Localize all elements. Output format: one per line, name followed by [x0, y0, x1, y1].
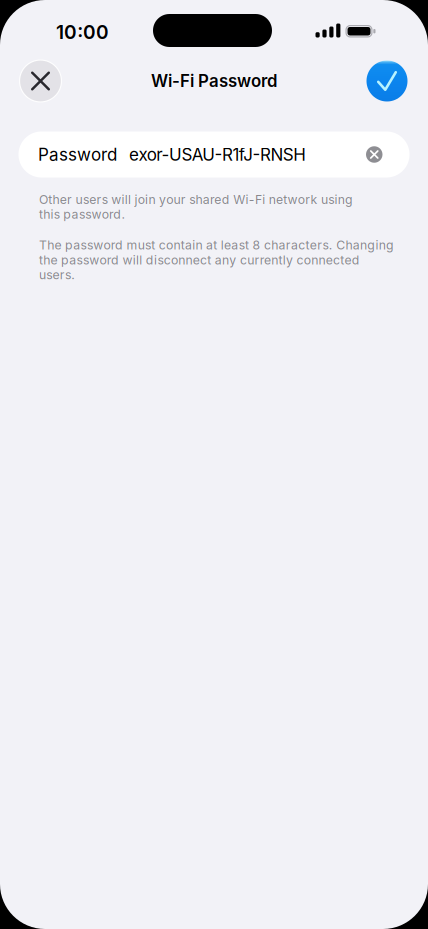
button[interactable]: Clear text: [366, 146, 382, 163]
button[interactable]: Done: [366, 60, 407, 101]
staticText: 10:00: [56, 20, 109, 44]
staticText: exor-USAU-R1fJ-RNSH: [129, 144, 306, 165]
staticText: Password: [38, 144, 117, 165]
staticText: Wi-Fi Password: [151, 71, 277, 91]
button[interactable]: Password: [18, 131, 409, 177]
staticText: The password must contain at least 8 cha…: [39, 238, 394, 282]
staticText: Other users will join your shared Wi-Fi …: [39, 192, 353, 222]
button[interactable]: Close: [19, 59, 62, 102]
